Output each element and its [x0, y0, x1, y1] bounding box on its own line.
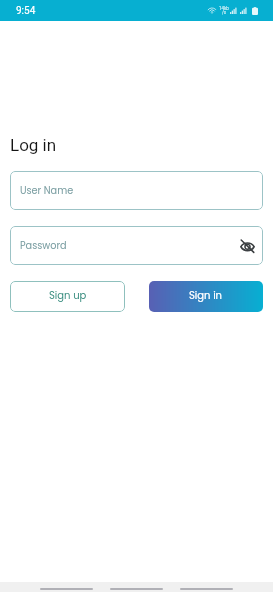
staticText: Sign in	[189, 288, 223, 302]
staticText: 9:54	[16, 5, 36, 17]
button[interactable]: Show password	[237, 236, 257, 256]
button[interactable]: Navigation	[110, 582, 163, 592]
button[interactable]: Navigation	[180, 582, 233, 592]
button[interactable]: Sign in	[149, 281, 263, 312]
staticText: Log in	[10, 135, 57, 155]
staticText: 14kb	[219, 6, 229, 11]
button[interactable]: Sign up	[10, 281, 125, 312]
staticText: Sign up	[49, 288, 87, 302]
staticText: User Name	[20, 184, 74, 198]
staticText: /s	[222, 10, 227, 15]
staticText: Password	[20, 239, 67, 253]
button[interactable]: Navigation	[40, 582, 93, 592]
button[interactable]: Password	[10, 226, 263, 265]
button[interactable]: User Name	[10, 171, 263, 210]
